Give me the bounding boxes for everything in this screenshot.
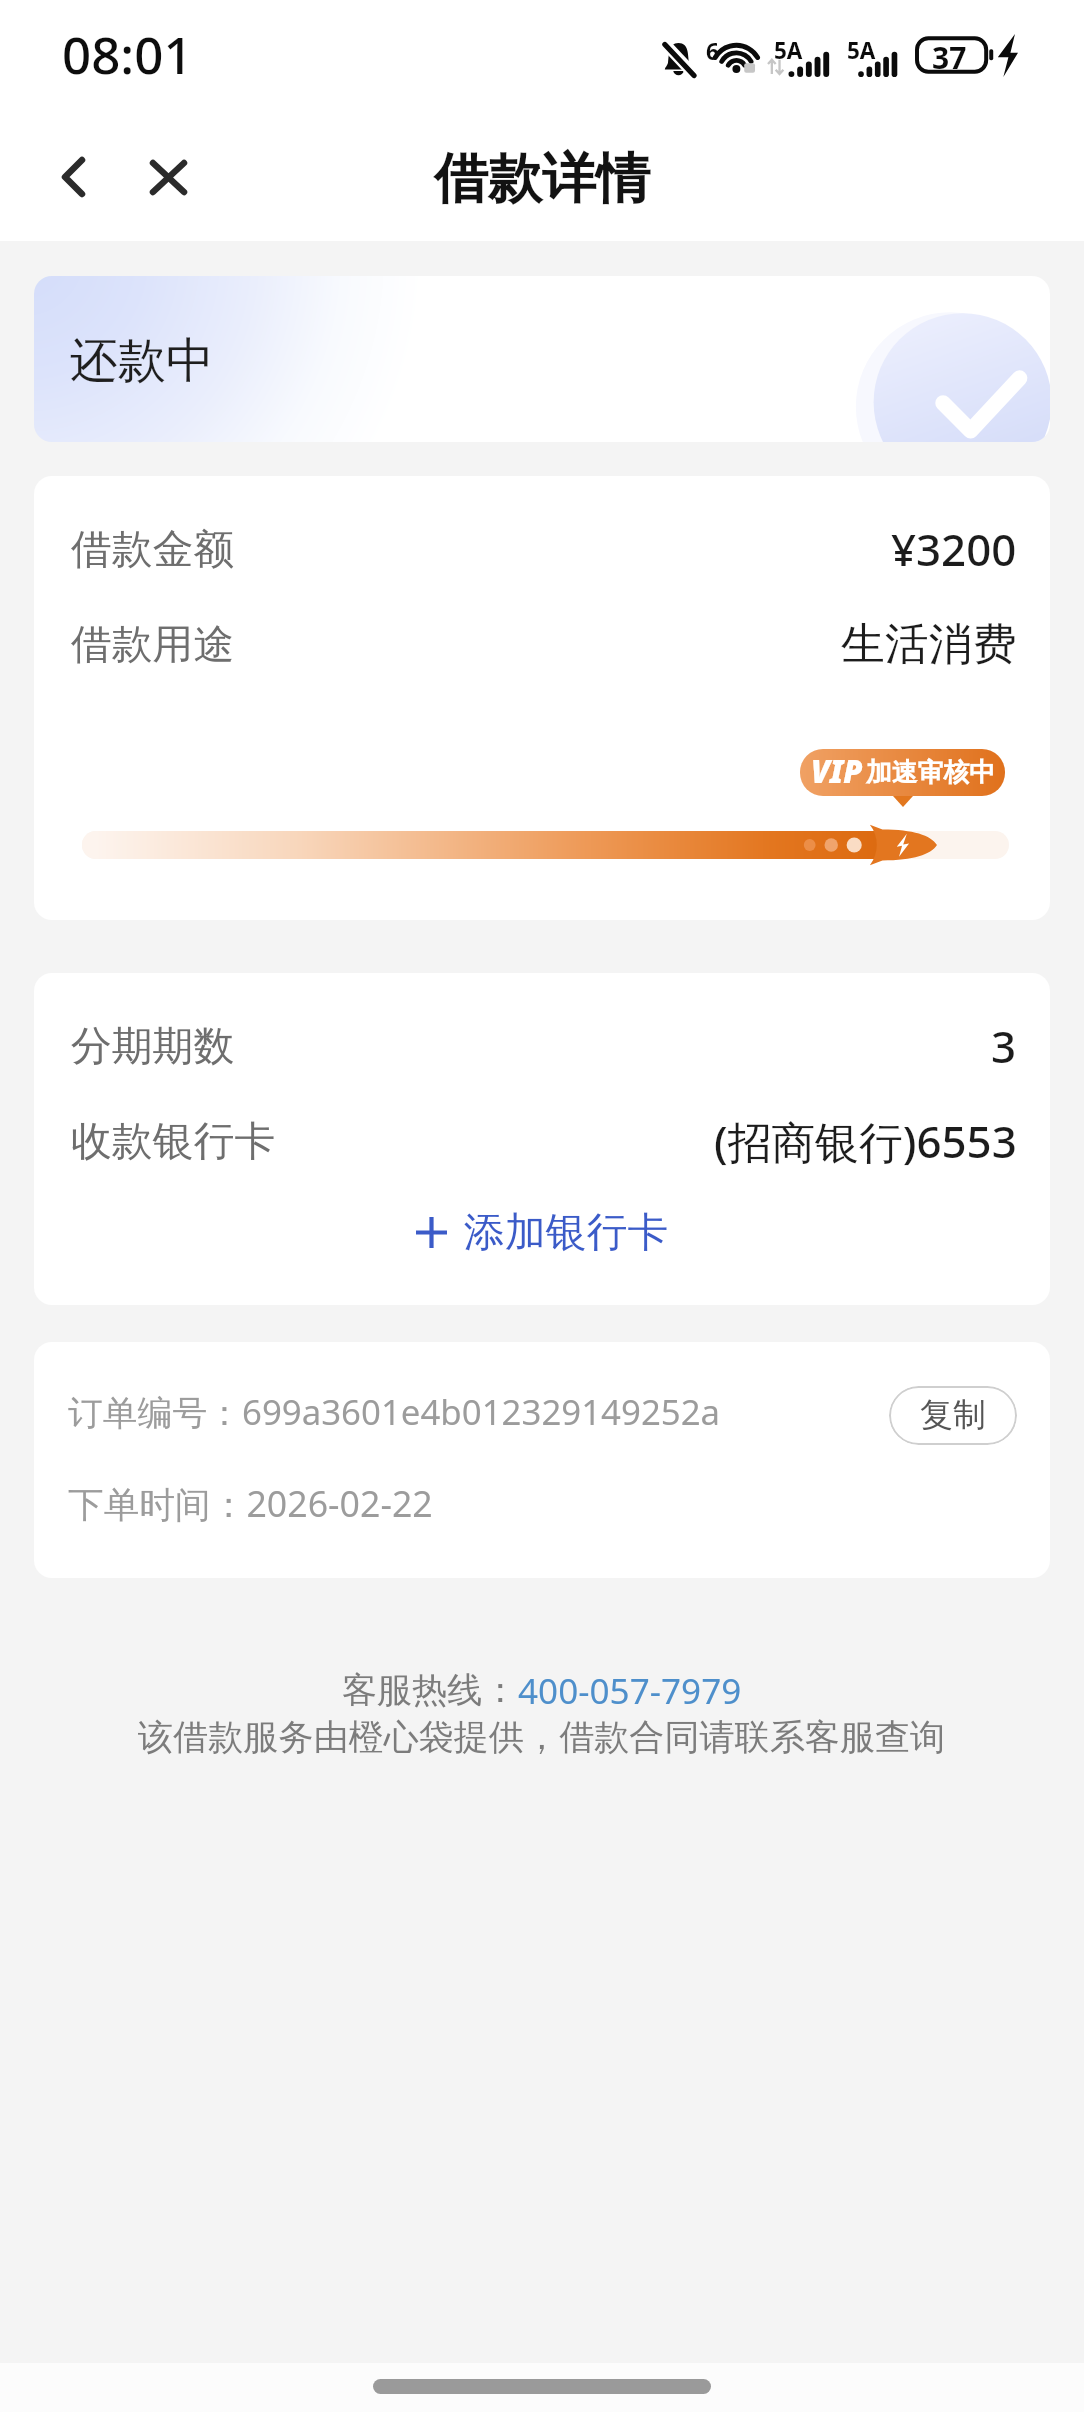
staticText: (招商银行)6553 <box>714 1111 1017 1171</box>
staticText: 下单时间：2026-02-22 <box>68 1479 433 1528</box>
button[interactable]: 添加银行卡 <box>34 1192 1050 1272</box>
staticText: 37 <box>932 37 967 78</box>
staticText: 收款银行卡 <box>71 1116 275 1167</box>
staticText: 借款详情 <box>434 145 650 213</box>
staticText: 还款中 <box>70 331 214 391</box>
staticText: 5A <box>774 35 803 66</box>
staticText: 3 <box>991 1016 1017 1076</box>
staticText: ¥3200 <box>891 519 1017 579</box>
staticText: 借款金额 <box>71 524 235 575</box>
staticText: 生活消费 <box>841 617 1017 672</box>
staticText: 添加银行卡 <box>464 1207 668 1258</box>
button[interactable]: 复制 <box>889 1386 1017 1445</box>
staticText: 5A <box>847 35 876 66</box>
button[interactable]: Close <box>147 110 189 241</box>
button[interactable]: Back <box>0 110 147 241</box>
staticText: 加速审核中 <box>866 756 995 789</box>
staticText: 该借款服务由橙心袋提供，借款合同请联系客服查询 <box>138 1715 946 1759</box>
staticText: VIP <box>811 750 863 792</box>
staticText: 6 <box>706 36 719 67</box>
staticText: 08:01 <box>62 19 193 88</box>
staticText: 分期期数 <box>71 1021 235 1072</box>
staticText: 订单编号：699a3601e4b012329149252a <box>68 1388 721 1436</box>
button[interactable]: 400-057-7979 <box>518 1666 742 1714</box>
staticText: 客服热线： <box>342 1668 518 1712</box>
staticText: 复制 <box>920 1394 986 1436</box>
staticText: 借款用途 <box>71 619 235 670</box>
